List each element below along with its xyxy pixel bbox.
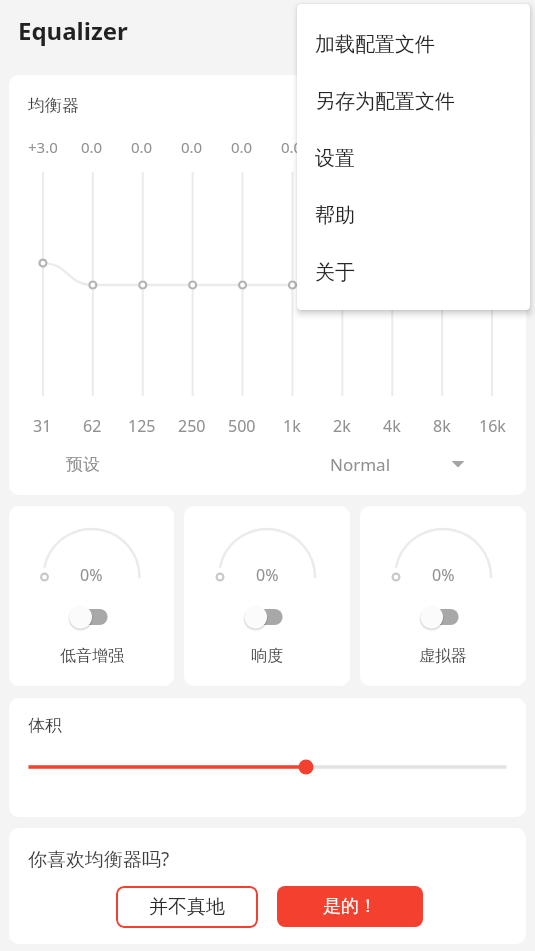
button[interactable]: 0% bbox=[9, 506, 174, 686]
button[interactable]: 加载配置文件 bbox=[297, 16, 530, 73]
staticText: 0% bbox=[80, 564, 103, 586]
staticText: 预设 bbox=[66, 454, 100, 475]
staticText: 0.0 bbox=[231, 137, 253, 155]
staticText: 4k bbox=[383, 415, 401, 435]
button[interactable]: 关于 bbox=[297, 244, 530, 301]
staticText: 0% bbox=[432, 564, 455, 586]
button[interactable]: 并不真地 bbox=[116, 886, 258, 928]
staticText: 并不真地 bbox=[149, 895, 225, 919]
staticText: 你喜欢均衡器吗? bbox=[28, 846, 170, 872]
staticText: 体积 bbox=[28, 715, 62, 736]
button[interactable]: Toggle bbox=[66, 602, 118, 632]
staticText: 另存为配置文件 bbox=[315, 89, 455, 114]
button[interactable]: 预设 bbox=[53, 446, 113, 482]
staticText: 31 bbox=[33, 415, 52, 435]
staticText: 是的！ bbox=[323, 895, 377, 918]
staticText: 16k bbox=[479, 415, 506, 435]
button[interactable]: 0% bbox=[184, 506, 350, 686]
staticText: Equalizer bbox=[18, 14, 128, 47]
button[interactable]: Toggle bbox=[241, 602, 293, 632]
staticText: 帮助 bbox=[315, 203, 355, 228]
staticText: 250 bbox=[178, 415, 206, 435]
button[interactable]: 设置 bbox=[297, 130, 530, 187]
staticText: 0.0 bbox=[131, 137, 153, 155]
staticText: 加载配置文件 bbox=[315, 32, 435, 57]
staticText: 0% bbox=[256, 564, 279, 586]
staticText: 低音增强 bbox=[60, 646, 124, 666]
button[interactable]: Toggle bbox=[417, 602, 469, 632]
button[interactable]: More options bbox=[487, 6, 535, 54]
button[interactable]: 是的！ bbox=[277, 886, 423, 927]
staticText: 2k bbox=[333, 415, 351, 435]
staticText: 500 bbox=[228, 415, 256, 435]
staticText: 8k bbox=[433, 415, 451, 435]
staticText: 虚拟器 bbox=[419, 646, 467, 666]
staticText: +3.0 bbox=[28, 137, 58, 155]
staticText: Normal bbox=[330, 453, 391, 476]
staticText: 1k bbox=[283, 415, 301, 435]
staticText: 125 bbox=[128, 415, 156, 435]
staticText: 关于 bbox=[315, 260, 355, 285]
staticText: 62 bbox=[83, 415, 102, 435]
staticText: 设置 bbox=[315, 146, 355, 171]
staticText: 均衡器 bbox=[28, 95, 79, 116]
staticText: 0.0 bbox=[281, 137, 303, 155]
button[interactable]: 0% bbox=[360, 506, 526, 686]
staticText: 响度 bbox=[251, 646, 283, 666]
staticText: 0.0 bbox=[181, 137, 203, 155]
staticText: 0.0 bbox=[331, 137, 353, 155]
staticText: 0.0 bbox=[81, 137, 103, 155]
button[interactable]: 帮助 bbox=[297, 187, 530, 244]
button[interactable]: Normal bbox=[280, 446, 495, 482]
button[interactable]: 另存为配置文件 bbox=[297, 73, 530, 130]
